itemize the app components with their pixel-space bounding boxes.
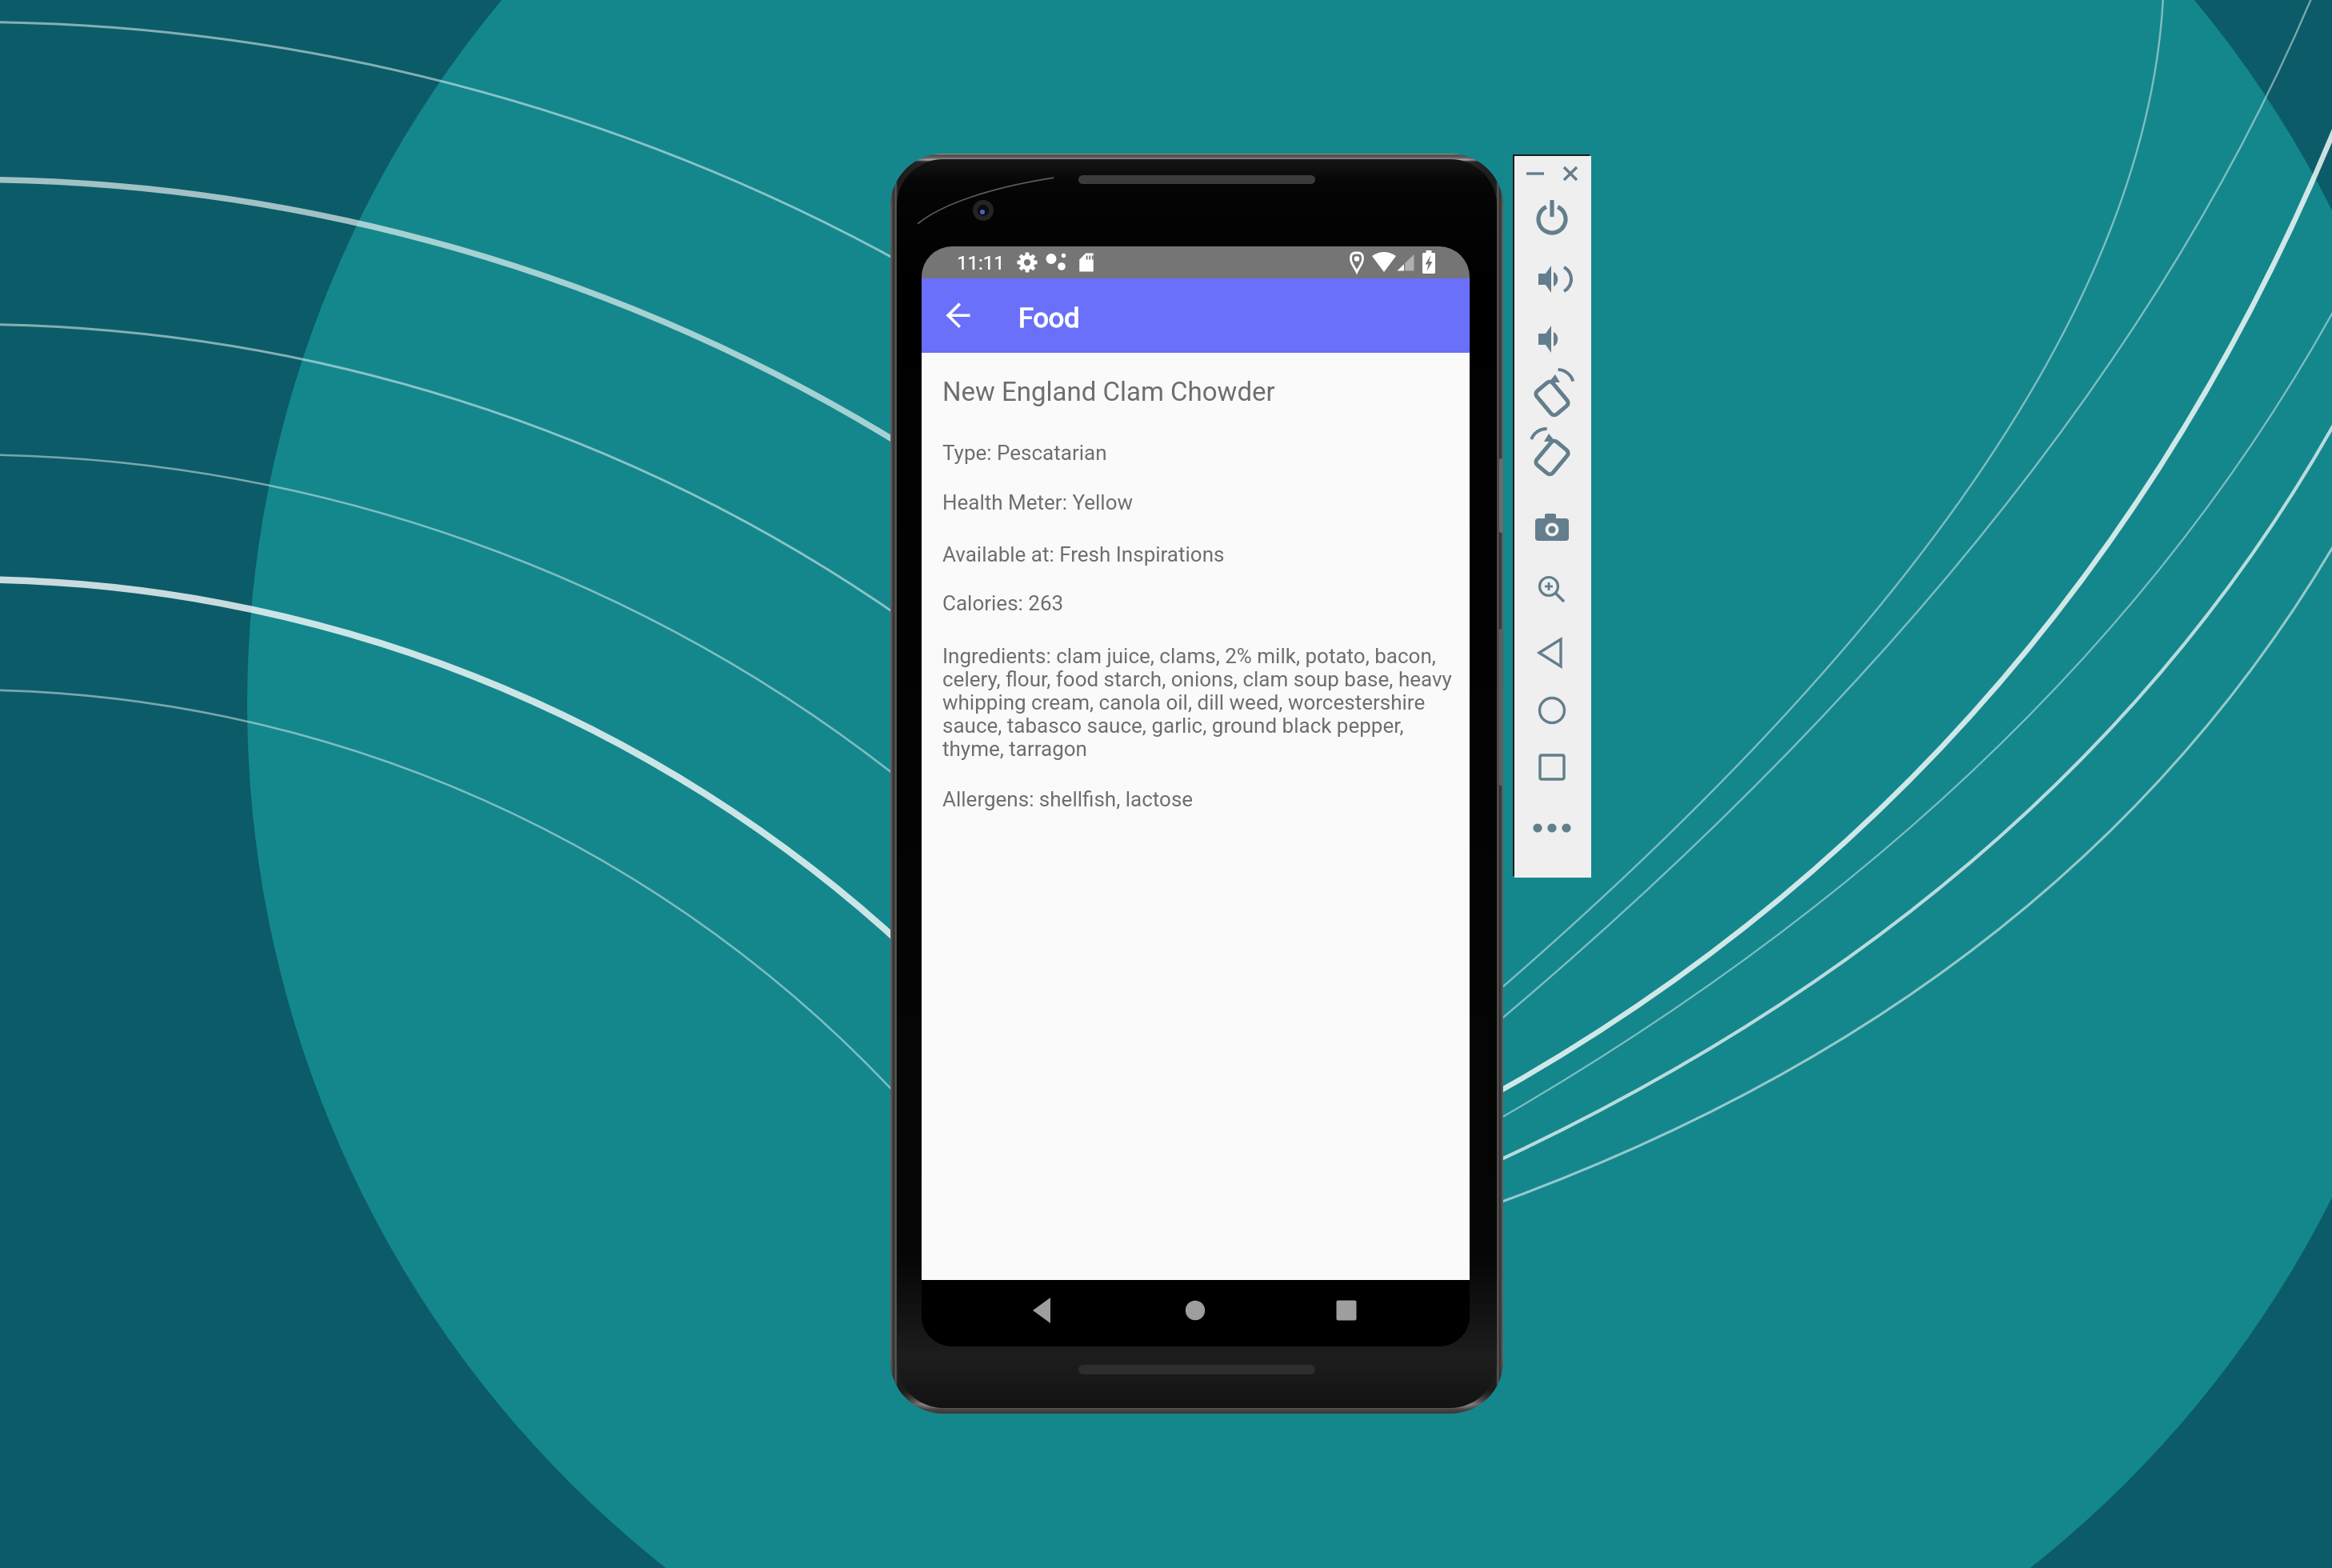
button[interactable]: Navigate up — [939, 295, 981, 337]
staticText: Calories: 263 — [942, 591, 1470, 615]
staticText: New England Clam Chowder — [942, 376, 1275, 407]
button[interactable]: Minimize — [1521, 162, 1546, 188]
staticText: 11:11 — [957, 252, 1005, 274]
staticText: Ingredients: clam juice, clams, 2% milk,… — [942, 644, 1458, 761]
staticText: Health Meter: Yellow — [942, 490, 1470, 514]
button[interactable]: Close — [1556, 162, 1582, 188]
staticText: Available at: Fresh Inspirations — [942, 542, 1470, 566]
staticText: Allergens: shellfish, lactose — [942, 787, 1470, 811]
staticText: Type: Pescatarian — [942, 441, 1470, 465]
staticText: Food — [1018, 302, 1080, 334]
